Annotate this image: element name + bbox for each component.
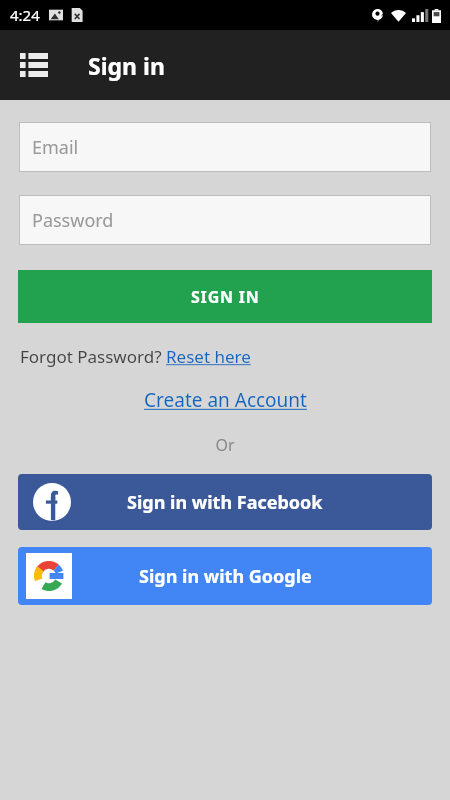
staticText: Reset here	[166, 345, 251, 368]
staticText: Forgot Password?	[20, 345, 166, 368]
button[interactable]: Password	[19, 195, 431, 245]
staticText: Sign in with Google	[139, 564, 312, 589]
staticText: Sign in	[88, 50, 165, 81]
button[interactable]: Forgot Password?	[20, 345, 251, 368]
button[interactable]: Sign in with Google	[18, 547, 432, 605]
staticText: Or	[215, 434, 235, 456]
button[interactable]: Create an Account	[144, 387, 307, 413]
button[interactable]: SIGN IN	[18, 270, 432, 323]
staticText: 4:24	[10, 5, 40, 25]
button[interactable]: Email	[19, 122, 431, 172]
staticText: SIGN IN	[191, 286, 260, 308]
button[interactable]: Sign in with Facebook	[18, 474, 432, 530]
staticText: Password	[32, 208, 114, 233]
button[interactable]: Open navigation menu	[12, 43, 56, 87]
staticText: Email	[32, 135, 79, 160]
staticText: Sign in with Facebook	[127, 490, 323, 515]
